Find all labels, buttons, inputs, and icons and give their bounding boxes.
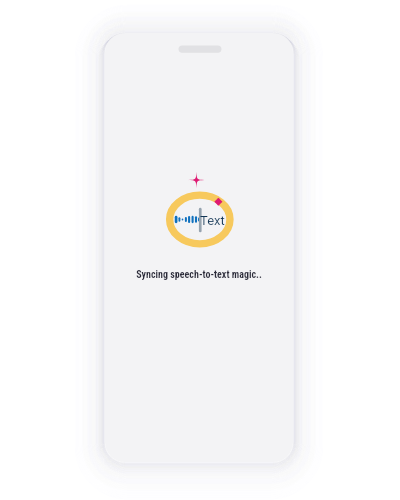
staticText: Text [200, 213, 225, 228]
staticText: Syncing speech-to-text magic.. [105, 269, 293, 281]
